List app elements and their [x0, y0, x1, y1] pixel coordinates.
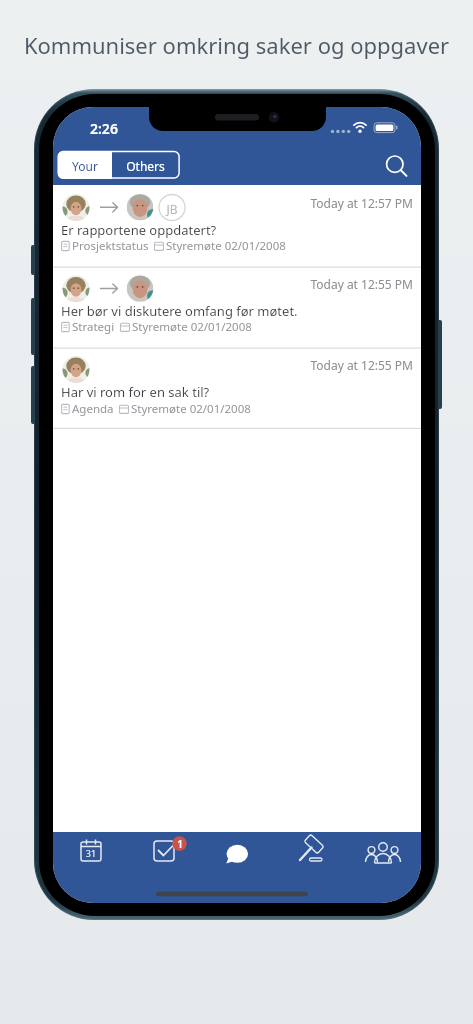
staticText: Your [58, 158, 112, 174]
staticText: Styremøte 02/01/2008 [131, 401, 251, 417]
button[interactable] [276, 834, 344, 879]
staticText: 31 [81, 847, 101, 859]
staticText: Strategi [72, 319, 115, 335]
staticText: Styremøte 02/01/2008 [166, 238, 286, 254]
button[interactable] [379, 149, 415, 183]
staticText: Today at 12:55 PM [261, 276, 413, 292]
staticText: Today at 12:55 PM [261, 357, 413, 373]
staticText: Kommuniser omkring saker og oppgaver [0, 30, 473, 60]
staticText: Styremøte 02/01/2008 [132, 319, 252, 335]
button[interactable] [203, 834, 271, 879]
staticText: Er rapportene oppdatert? [61, 221, 217, 239]
button[interactable]: Others [112, 152, 179, 179]
staticText: Agenda [72, 401, 114, 417]
button[interactable] [53, 348, 421, 428]
staticText: Prosjektstatus [72, 238, 149, 254]
button[interactable] [57, 834, 125, 879]
button[interactable] [130, 834, 198, 879]
staticText: Today at 12:57 PM [261, 195, 413, 211]
button[interactable]: Your [58, 152, 112, 179]
button[interactable] [53, 185, 421, 267]
staticText: Her bør vi diskutere omfang før møtet. [61, 302, 298, 320]
staticText: Others [112, 158, 179, 174]
button[interactable] [349, 834, 417, 879]
button[interactable] [53, 267, 421, 348]
staticText: 1 [173, 837, 187, 850]
staticText: Har vi rom for en sak til? [61, 383, 210, 401]
staticText: 2:26 [90, 119, 118, 138]
staticText: JB [160, 201, 184, 216]
